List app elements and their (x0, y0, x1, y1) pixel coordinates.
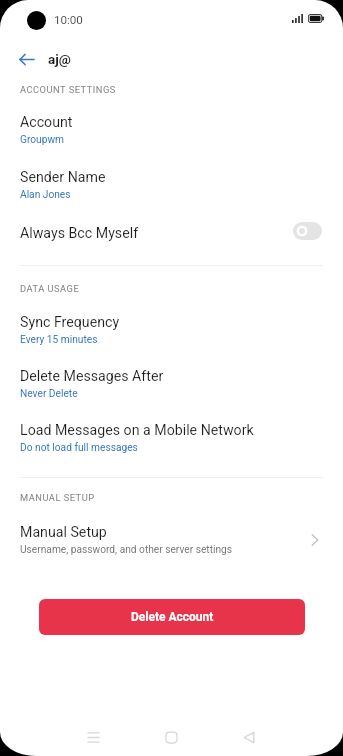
staticText: ACCOUNT SETTINGS (20, 84, 116, 95)
staticText: MANUAL SETUP (20, 492, 95, 503)
staticText: Delete Messages After (20, 368, 164, 385)
staticText: Sender Name (20, 169, 106, 186)
button[interactable]: Delete Account (39, 599, 305, 635)
staticText: Never Delete (20, 388, 78, 400)
staticText: DATA USAGE (20, 283, 80, 294)
button[interactable]: Sync Frequency (0, 308, 343, 356)
staticText: Always Bcc Myself (20, 225, 139, 242)
staticText: 10:00 (54, 13, 83, 27)
staticText: Sync Frequency (20, 314, 120, 331)
button[interactable]: Back (9, 42, 43, 76)
button[interactable]: Manual Setup (0, 521, 343, 564)
staticText: Account (20, 114, 73, 131)
button[interactable]: Delete Messages After (0, 362, 343, 410)
staticText: Every 15 minutes (20, 334, 98, 346)
button[interactable]: Home (151, 717, 191, 756)
staticText: Username, password, and other server set… (20, 544, 233, 556)
button[interactable]: Back (229, 717, 269, 756)
button[interactable]: Account (0, 108, 343, 156)
button[interactable]: Always Bcc Myself (0, 213, 343, 249)
button[interactable]: Load Messages on a Mobile Network (0, 416, 343, 464)
staticText: Delete Account (131, 610, 214, 624)
button[interactable]: Sender Name (0, 163, 343, 211)
button[interactable]: Recent apps (73, 717, 113, 756)
staticText: Groupwm (20, 134, 65, 146)
staticText: Alan Jones (20, 189, 71, 201)
staticText: aj@ (48, 51, 71, 67)
staticText: Load Messages on a Mobile Network (20, 422, 254, 439)
staticText: Manual Setup (20, 524, 107, 541)
staticText: Do not load full messages (20, 442, 138, 454)
